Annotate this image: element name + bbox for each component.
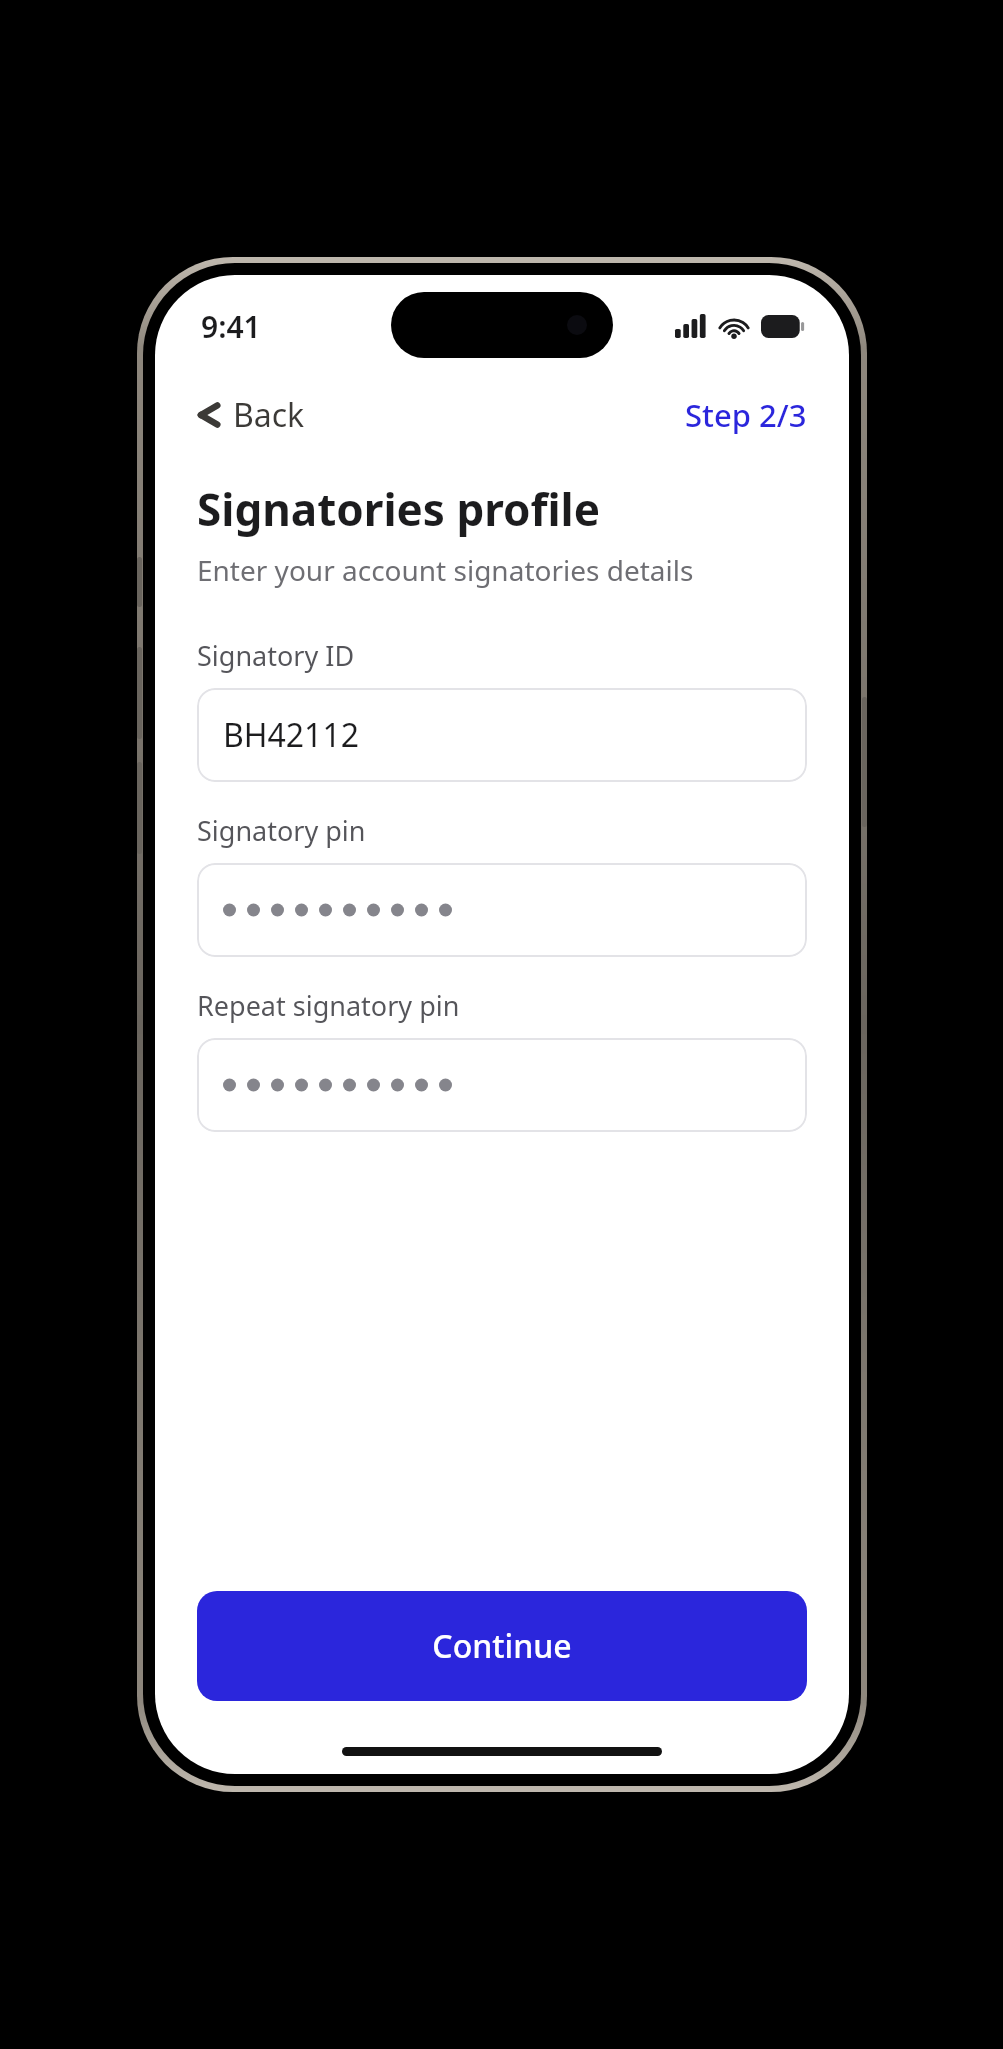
button[interactable]: Back <box>189 385 313 445</box>
staticText: Signatories profile <box>197 479 600 539</box>
staticText: BH42112 <box>223 713 360 757</box>
button[interactable] <box>197 1038 807 1132</box>
staticText: Signatory ID <box>197 637 355 674</box>
button[interactable]: Step 2/3 <box>677 386 815 444</box>
staticText: Repeat signatory pin <box>197 987 460 1024</box>
button[interactable] <box>197 863 807 957</box>
staticText: Back <box>233 393 305 437</box>
staticText: Enter your account signatories details <box>197 551 694 589</box>
staticText: Continue <box>432 1624 572 1668</box>
staticText: 9:41 <box>201 306 261 347</box>
button[interactable]: Continue <box>197 1591 807 1701</box>
button[interactable]: BH42112 <box>197 688 807 782</box>
staticText: Signatory pin <box>197 812 366 849</box>
staticText: Step 2/3 <box>685 394 807 436</box>
